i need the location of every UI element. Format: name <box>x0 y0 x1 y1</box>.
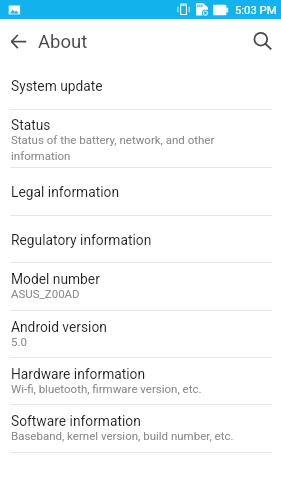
button[interactable]: Software information <box>0 405 281 453</box>
button[interactable]: Search <box>247 26 278 57</box>
staticText: Status <box>11 117 51 133</box>
staticText: 5.0 <box>11 335 27 348</box>
button[interactable]: Back <box>3 26 34 57</box>
staticText: Baseband, kernel version, build number, … <box>11 429 234 442</box>
staticText: Model number <box>11 271 100 287</box>
button[interactable]: Model number <box>0 263 281 311</box>
staticText: About <box>38 31 88 53</box>
button[interactable]: Hardware information <box>0 358 281 405</box>
button[interactable]: Legal information <box>0 168 281 216</box>
button[interactable]: Status <box>0 110 281 168</box>
staticText: Software information <box>11 413 141 429</box>
staticText: Wi-fi, bluetooth, firmware version, etc. <box>11 382 202 395</box>
staticText: Android version <box>11 319 107 335</box>
staticText: Status of the battery, network, and othe… <box>11 133 261 162</box>
button[interactable]: System update <box>0 63 281 110</box>
staticText: ASUS_Z00AD <box>11 287 80 300</box>
button[interactable]: Regulatory information <box>0 216 281 263</box>
staticText: Hardware information <box>11 366 146 382</box>
staticText: Regulatory information <box>11 232 152 248</box>
button[interactable]: Android version <box>0 311 281 358</box>
staticText: 5:03 PM <box>235 4 277 17</box>
staticText: System update <box>11 78 103 94</box>
staticText: Legal information <box>11 184 120 200</box>
